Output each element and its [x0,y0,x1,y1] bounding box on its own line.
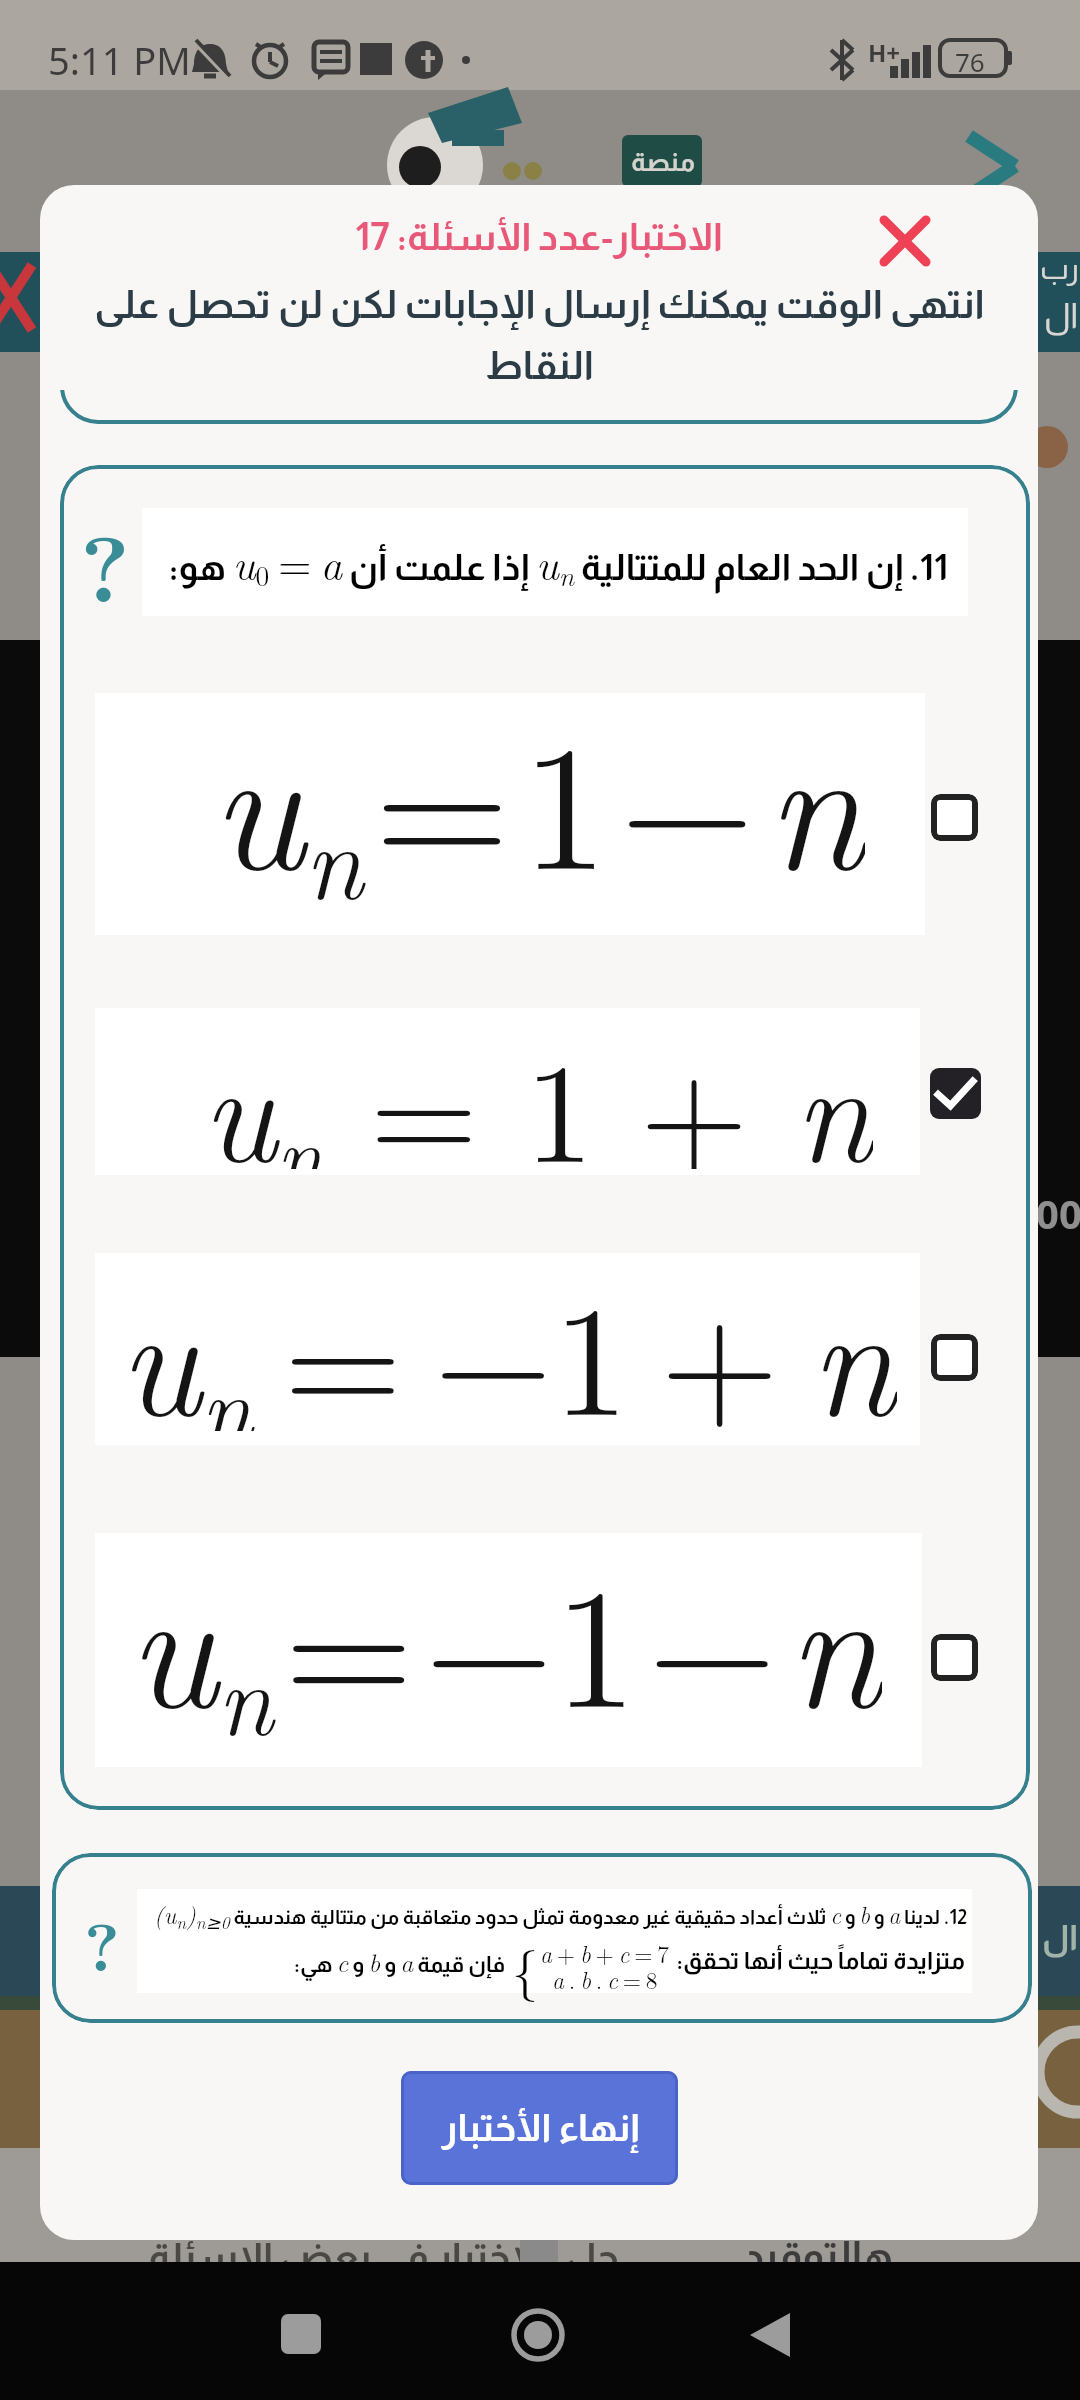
staticText: { [512,1930,539,2003]
button[interactable] [955,128,1035,203]
staticText: انتهى الوقت يمكنك إرسال الإجابات لكن لن … [94,283,985,387]
button[interactable]: un = 1 − n [95,693,1020,935]
staticText: 12. لدينا a و b و c ثلاث أعداد حقيقية غي… [154,1897,967,1934]
staticText: H+ [868,36,901,69]
staticText: ال [1042,1918,1079,1956]
staticText: الاختبار-عدد الأسئلة: 17 [355,216,723,258]
button[interactable] [930,1068,981,1119]
staticText: a . b . c = 8 [552,1962,658,1996]
staticText: un = 1 + n [202,1002,873,1169]
button[interactable] [137,1889,972,1993]
staticText: هالتوقيد [743,2234,893,2274]
button[interactable] [872,208,936,272]
staticText: متزايدة تماماً حيث أنها تحقق: [676,1947,965,1974]
staticText: فإن قيمة a و b و c هي: [294,1943,505,1980]
staticText: 76 [955,44,985,79]
staticText: un = −1 − n [128,1515,882,1749]
staticText: un = −1 + n [119,1239,897,1431]
staticText: 00 [1036,1186,1080,1240]
staticText: منصة [630,147,695,176]
staticText: إنهاء الأختبار [441,2107,639,2149]
staticText: 5:11 PM [48,34,191,86]
button[interactable] [508,2305,568,2365]
staticText: جل بالاختبار في بعض الاسئلة [148,2236,619,2276]
button[interactable]: un = −1 − n [95,1533,1017,1767]
staticText: 11. إن الحد العام للمتتالية un إذا علمت … [162,530,948,594]
button[interactable] [745,2310,795,2360]
button[interactable] [931,794,978,841]
button[interactable] [281,2314,321,2354]
button[interactable]: ? [84,1896,120,1990]
button[interactable]: إنهاء الأختبار [401,2071,678,2185]
button[interactable]: un = 1 + n [95,1008,1015,1175]
staticText: un = 1 − n [211,668,865,910]
staticText: رب [1040,252,1079,285]
button[interactable] [931,1634,978,1681]
button[interactable]: 11. إن الحد العام للمتتالية un إذا علمت … [142,508,968,616]
button[interactable]: un = −1 + n [95,1253,1015,1445]
staticText: a + b + c = 7 [540,1936,670,1970]
button[interactable] [931,1334,978,1381]
staticText: ال [1044,296,1079,334]
button[interactable]: ? [80,498,130,629]
